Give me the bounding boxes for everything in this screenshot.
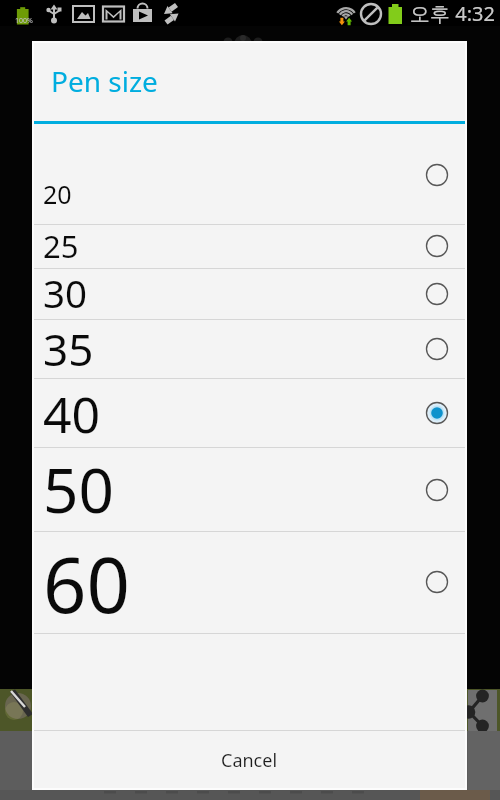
button[interactable]: 30 xyxy=(32,268,467,320)
staticText: 100% xyxy=(15,16,33,26)
button[interactable]: 40 xyxy=(32,378,467,447)
staticText: 50 xyxy=(43,447,114,531)
staticText: 20 xyxy=(43,177,72,211)
staticText: 25 xyxy=(43,225,79,267)
staticText: Cancel xyxy=(221,748,278,773)
button[interactable]: 35 xyxy=(32,319,467,378)
button[interactable]: 60 xyxy=(32,531,467,633)
button[interactable]: 20 xyxy=(32,125,467,224)
staticText: 35 xyxy=(43,319,94,378)
staticText: 오후 4:32 xyxy=(410,0,495,26)
staticText: 30 xyxy=(43,267,88,319)
staticText: 40 xyxy=(43,380,101,448)
staticText: Pen size xyxy=(51,62,158,100)
button[interactable]: 50 xyxy=(32,447,467,532)
staticText: 60 xyxy=(43,532,130,634)
button[interactable]: Cancel xyxy=(32,731,467,790)
button[interactable]: 25 xyxy=(32,224,467,268)
